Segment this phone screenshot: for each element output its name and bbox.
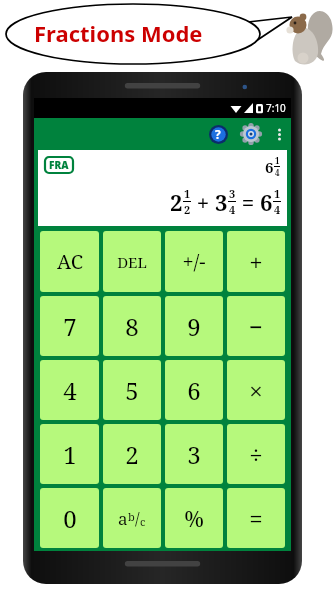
button[interactable]: 4 [40,360,99,420]
button[interactable]: 1 [40,424,99,484]
staticText: +/- [182,248,206,275]
button[interactable]: DEL [103,231,161,292]
staticText: 0 [63,502,77,535]
button[interactable]: 9 [165,296,223,356]
staticText: AC [57,248,83,275]
button[interactable]: 5 [103,360,161,420]
staticText: 7 [63,310,77,343]
staticText: 6 [260,187,273,217]
button[interactable]: ÷ [227,424,285,484]
staticText: 7:10 [266,101,286,115]
button[interactable]: +/- [165,231,223,292]
staticText: 1 [184,186,191,201]
button[interactable]: 8 [103,296,161,356]
staticText: 6 [265,157,274,177]
staticText: 3 [187,438,201,471]
button[interactable]: 6 [165,360,223,420]
button[interactable]: % [165,488,223,548]
staticText: + [249,245,263,278]
button[interactable]: 7 [40,296,99,356]
staticText: 1 [63,438,77,471]
staticText: 8 [125,310,139,343]
button[interactable]: 3 [165,424,223,484]
staticText: ÷ [249,438,263,471]
button[interactable]: Settings [238,121,264,147]
staticText: / [135,508,140,530]
staticText: 4 [63,374,77,407]
staticText: ? [215,126,221,142]
staticText: 6 [187,374,201,407]
button[interactable]: = [227,488,285,548]
button[interactable]: AC [40,231,99,292]
button[interactable]: 2 [103,424,161,484]
staticText: × [249,374,263,407]
staticText: 5 [125,374,139,407]
button[interactable]: − [227,296,285,356]
staticText: 1 [275,155,280,166]
staticText: 3 [229,186,236,201]
button[interactable]: More options [270,125,288,143]
staticText: = [236,187,260,217]
button[interactable]: Help [205,121,231,147]
staticText: b [128,509,135,524]
button[interactable]: × [227,360,285,420]
staticText: + [191,187,215,217]
staticText: 4 [229,202,236,217]
staticText: − [249,310,263,343]
staticText: FRA [49,158,69,172]
staticText: 4 [275,167,280,178]
staticText: 1 [274,186,281,201]
staticText: c [140,514,146,529]
staticText: 2 [184,202,191,217]
button[interactable]: a [103,488,161,548]
staticText: = [249,502,263,535]
staticText: % [184,503,204,533]
button[interactable]: 0 [40,488,99,548]
button[interactable]: + [227,231,285,292]
staticText: 9 [187,310,201,343]
staticText: 2 [125,438,139,471]
staticText: 4 [274,202,281,217]
staticText: 2 [170,187,183,217]
staticText: 3 [215,187,228,217]
staticText: DEL [117,252,147,272]
staticText: Fractions Mode [34,18,203,48]
staticText: a [118,507,128,530]
